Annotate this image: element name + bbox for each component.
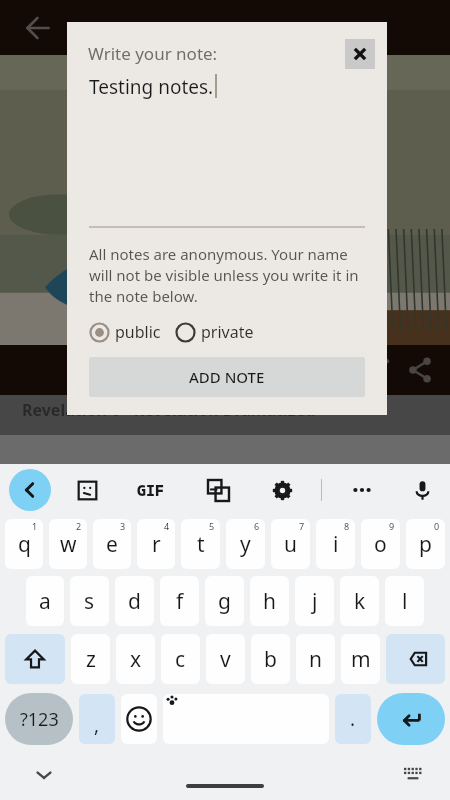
staticText: ?123 — [20, 707, 59, 732]
staticText: 3 — [120, 520, 126, 532]
staticText: 2 — [76, 520, 82, 532]
staticText: u — [284, 530, 297, 559]
staticText: n — [309, 645, 322, 674]
button[interactable]: m — [341, 634, 380, 684]
staticText: 4 — [164, 520, 170, 532]
button[interactable]: Backspace — [386, 634, 445, 684]
button[interactable]: g — [205, 576, 244, 626]
staticText: c — [175, 645, 186, 674]
button[interactable]: f — [160, 576, 199, 626]
button[interactable]: Switch keyboard — [396, 758, 430, 792]
button[interactable]: w — [49, 519, 87, 569]
staticText: Testing notes. — [89, 74, 214, 100]
button[interactable]: y — [226, 519, 265, 569]
button[interactable]: Translate — [197, 469, 239, 511]
staticText: r — [152, 530, 161, 559]
button[interactable]: GIF — [130, 469, 172, 511]
staticText: d — [128, 587, 141, 616]
button[interactable]: o — [361, 519, 400, 569]
staticText: private — [201, 321, 254, 343]
staticText: 7 — [299, 520, 305, 532]
button[interactable]: j — [295, 576, 334, 626]
button[interactable]: Shift — [5, 634, 65, 684]
staticText: l — [402, 587, 408, 616]
staticText: i — [333, 530, 339, 559]
button[interactable]: ?123 — [5, 693, 73, 745]
button[interactable]: h — [250, 576, 289, 626]
button[interactable]: More options — [341, 469, 383, 511]
button[interactable]: v — [206, 634, 245, 684]
staticText: . — [350, 706, 356, 732]
staticText: w — [60, 530, 77, 559]
button[interactable]: q — [5, 519, 43, 569]
staticText: h — [263, 587, 276, 616]
staticText: p — [419, 530, 432, 559]
staticText: ADD NOTE — [189, 367, 265, 387]
staticText: 1 — [32, 520, 38, 532]
staticText: j — [312, 587, 318, 616]
staticText: s — [84, 587, 95, 616]
staticText: 0 — [434, 520, 440, 532]
button[interactable]: c — [161, 634, 200, 684]
staticText: q — [18, 530, 31, 559]
button[interactable]: Back — [9, 469, 51, 511]
staticText: Revelation 6 - Revelation Dramatized — [22, 399, 316, 421]
staticText: 8 — [344, 520, 350, 532]
button[interactable]: t — [181, 519, 220, 569]
button[interactable]: . — [335, 694, 371, 744]
button[interactable]: , — [79, 694, 115, 744]
button[interactable]: Enter — [377, 693, 445, 745]
button[interactable]: Share — [398, 348, 442, 392]
staticText: 9 — [389, 520, 395, 532]
staticText: 5 — [209, 520, 215, 532]
button[interactable]: Space — [163, 694, 329, 744]
staticText: y — [240, 530, 251, 559]
button[interactable]: Edit — [354, 348, 398, 392]
button[interactable]: e — [93, 519, 131, 569]
button[interactable]: d — [115, 576, 154, 626]
staticText: Write your note: — [88, 42, 345, 65]
staticText: 6 — [254, 520, 260, 532]
staticText: a — [39, 587, 51, 616]
button[interactable]: Sticker — [66, 469, 108, 511]
button[interactable]: public — [89, 321, 161, 343]
button[interactable]: Emoji — [121, 694, 157, 744]
button[interactable]: Voice input — [401, 469, 443, 511]
staticText: z — [86, 645, 96, 674]
staticText: , — [94, 712, 100, 738]
staticText: v — [220, 645, 231, 674]
staticText: k — [354, 587, 366, 616]
button[interactable]: b — [251, 634, 290, 684]
button[interactable]: s — [70, 576, 109, 626]
staticText: b — [264, 645, 277, 674]
staticText: m — [351, 645, 371, 674]
button[interactable]: n — [296, 634, 335, 684]
button[interactable]: u — [271, 519, 310, 569]
staticText: e — [106, 530, 118, 559]
button[interactable]: Close — [345, 39, 375, 69]
staticText: public — [115, 321, 161, 343]
button[interactable]: k — [340, 576, 379, 626]
staticText: g — [218, 587, 231, 616]
button[interactable]: private — [175, 321, 254, 343]
staticText: f — [176, 587, 184, 616]
staticText: o — [374, 530, 387, 559]
button[interactable]: Hide keyboard — [26, 757, 62, 793]
staticText: t — [197, 530, 205, 559]
button[interactable]: ADD NOTE — [89, 357, 365, 397]
button[interactable]: l — [385, 576, 424, 626]
staticText: x — [130, 645, 142, 674]
button[interactable]: x — [116, 634, 155, 684]
button[interactable]: i — [316, 519, 355, 569]
button[interactable]: r — [137, 519, 175, 569]
button[interactable]: Settings — [261, 469, 303, 511]
button[interactable]: a — [26, 576, 64, 626]
button[interactable]: p — [406, 519, 445, 569]
button[interactable]: Back — [14, 4, 62, 52]
staticText: All notes are anonymous. Your name will … — [89, 244, 367, 307]
staticText: GIF — [137, 480, 165, 500]
button[interactable]: z — [71, 634, 110, 684]
